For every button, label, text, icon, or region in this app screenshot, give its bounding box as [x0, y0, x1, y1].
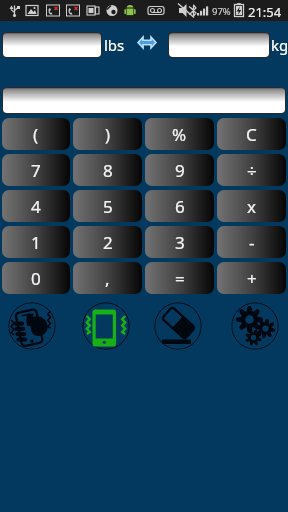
staticText: 5 [103, 195, 113, 218]
button[interactable]: + [217, 262, 286, 294]
button[interactable] [169, 33, 269, 57]
button[interactable]: % [145, 118, 214, 150]
button[interactable]: Vibration [82, 302, 130, 350]
button[interactable]: Erase [154, 302, 202, 350]
button[interactable]: Shake to clear [8, 302, 56, 350]
button[interactable]: = [145, 262, 214, 294]
staticText: 8 [103, 159, 113, 182]
staticText: 97% [212, 5, 231, 18]
staticText: C [246, 123, 257, 146]
button[interactable]: ÷ [217, 154, 286, 186]
button[interactable] [3, 33, 101, 57]
button[interactable]: ( [2, 118, 70, 150]
button[interactable]: 4 [2, 190, 70, 222]
staticText: 2 [103, 231, 113, 254]
staticText: 7 [31, 159, 41, 182]
button[interactable]: 6 [145, 190, 214, 222]
staticText: , [105, 267, 110, 290]
staticText: = [175, 267, 185, 290]
button[interactable]: Settings [231, 302, 279, 350]
button[interactable]: - [217, 226, 286, 258]
staticText: - [249, 231, 255, 254]
button[interactable]: 8 [73, 154, 142, 186]
staticText: 1 [31, 231, 41, 254]
staticText: 6 [175, 195, 185, 218]
staticText: 21:54 [248, 3, 282, 21]
staticText: ( [33, 123, 39, 146]
staticText: 0 [31, 267, 41, 290]
staticText: lbs [104, 35, 125, 55]
button[interactable] [3, 88, 285, 113]
staticText: 3 [175, 231, 185, 254]
button[interactable]: 2 [73, 226, 142, 258]
staticText: ) [105, 123, 111, 146]
button[interactable]: 3 [145, 226, 214, 258]
button[interactable]: x [217, 190, 286, 222]
staticText: 9 [175, 159, 185, 182]
staticText: + [247, 267, 257, 290]
button[interactable]: 7 [2, 154, 70, 186]
staticText: x [247, 195, 256, 218]
staticText: ÷ [247, 159, 257, 182]
button[interactable]: , [73, 262, 142, 294]
button[interactable]: 0 [2, 262, 70, 294]
button[interactable]: C [217, 118, 286, 150]
button[interactable]: ) [73, 118, 142, 150]
staticText: % [172, 123, 187, 146]
staticText: 4 [31, 195, 41, 218]
button[interactable]: 9 [145, 154, 214, 186]
button[interactable]: 5 [73, 190, 142, 222]
button[interactable]: Swap units [138, 37, 156, 48]
button[interactable]: 1 [2, 226, 70, 258]
staticText: kg [271, 35, 288, 55]
